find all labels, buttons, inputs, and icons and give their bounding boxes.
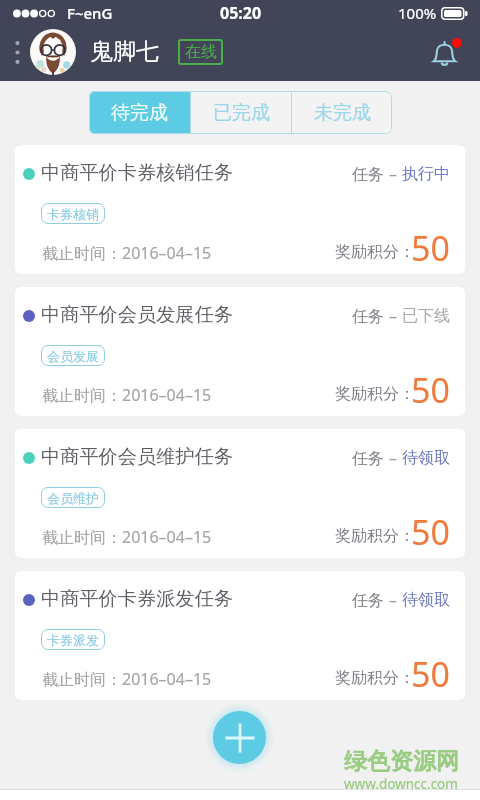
staticText: 中商平价卡券派发任务 <box>41 587 233 611</box>
button[interactable]: 中商平价卡券派发任务 <box>15 571 465 700</box>
staticText: 绿色资源网 <box>344 747 459 776</box>
staticText: 中商平价卡券核销任务 <box>41 161 233 185</box>
staticText: 待领取 <box>402 590 450 610</box>
staticText: 50 <box>411 225 450 271</box>
button[interactable]: 已完成 <box>191 91 291 134</box>
staticText: – <box>389 447 402 469</box>
staticText: 任务 <box>352 163 389 185</box>
staticText: 截止时间：2016–04–15 <box>42 242 212 264</box>
staticText: www.downcc.com <box>344 775 458 793</box>
staticText: 中商平价会员发展任务 <box>41 303 233 327</box>
staticText: 截止时间：2016–04–15 <box>42 526 212 548</box>
staticText: 奖励积分： <box>335 668 415 688</box>
staticText: 会员发展 <box>47 348 99 364</box>
staticText: – <box>389 163 402 185</box>
button[interactable]: 中商平价会员维护任务 <box>15 429 465 558</box>
staticText: 任务 <box>352 589 389 611</box>
button[interactable]: 未完成 <box>292 91 392 134</box>
staticText: – <box>389 589 402 611</box>
staticText: 任务 <box>352 447 389 469</box>
button[interactable]: Add task <box>213 711 266 764</box>
staticText: 会员维护 <box>47 490 99 506</box>
button[interactable]: 鬼脚七 <box>30 29 223 75</box>
staticText: 任务 <box>352 305 389 327</box>
staticText: 待领取 <box>402 448 450 468</box>
button[interactable]: Notifications <box>428 37 461 70</box>
staticText: 50 <box>411 509 450 555</box>
staticText: 执行中 <box>402 164 450 184</box>
button[interactable]: 中商平价卡券核销任务 <box>15 145 465 274</box>
staticText: 奖励积分： <box>335 242 415 262</box>
staticText: 已下线 <box>402 306 450 326</box>
staticText: 待完成 <box>111 101 168 125</box>
staticText: 鬼脚七 <box>90 37 159 66</box>
staticText: 卡券核销 <box>47 206 99 222</box>
staticText: 未完成 <box>314 101 371 125</box>
staticText: 在线 <box>185 42 217 62</box>
staticText: 截止时间：2016–04–15 <box>42 384 212 406</box>
staticText: F~enG <box>67 3 113 23</box>
button[interactable]: 中商平价会员发展任务 <box>15 287 465 416</box>
staticText: 05:20 <box>220 2 262 24</box>
staticText: 50 <box>411 651 450 697</box>
staticText: – <box>389 305 402 327</box>
staticText: 50 <box>411 367 450 413</box>
button[interactable]: 待完成 <box>89 91 190 134</box>
staticText: 卡券派发 <box>47 632 99 648</box>
staticText: 100% <box>398 3 437 23</box>
staticText: 中商平价会员维护任务 <box>41 445 233 469</box>
button[interactable]: More options <box>6 34 28 70</box>
staticText: 截止时间：2016–04–15 <box>42 668 212 690</box>
staticText: 奖励积分： <box>335 526 415 546</box>
staticText: 已完成 <box>213 101 270 125</box>
staticText: 奖励积分： <box>335 384 415 404</box>
